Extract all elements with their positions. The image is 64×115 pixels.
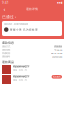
staticText: 退款成功，款项已原路返回 [4, 22, 28, 25]
staticText: ‹ [3, 5, 5, 13]
staticText: 退款信息 [2, 41, 14, 45]
staticText: › [15, 15, 16, 19]
staticText: 商品名称示例文字 [13, 75, 29, 78]
staticText: 规格：红色 1件 [13, 78, 27, 81]
staticText: 03-12 14:22 [51, 52, 62, 55]
staticText: 已通过 [2, 15, 14, 19]
staticText: 原路退回 [54, 45, 62, 48]
staticText: 规格：红色 1件 [13, 68, 27, 71]
staticText: 再次购买 [53, 75, 61, 78]
staticText: 申请时间 [2, 52, 10, 55]
staticText: 退款方式 [2, 45, 10, 48]
staticText: 客服小美 已为您处理 [10, 28, 38, 31]
button[interactable]: 再次购买 [52, 75, 62, 79]
staticText: 退款详情 [26, 7, 38, 11]
staticText: 9:41 [2, 0, 9, 4]
staticText: 退款金额 [2, 48, 10, 51]
staticText: 退款编号 [2, 55, 10, 58]
staticText: 商品名称示例文字 [13, 65, 29, 68]
button[interactable]: Back [2, 5, 7, 13]
staticText: 退款商品 [2, 60, 14, 64]
staticText: ▪▪▮ [57, 1, 62, 4]
staticText: ￥128.00 [54, 48, 62, 51]
staticText: 2024031288 [52, 55, 62, 58]
